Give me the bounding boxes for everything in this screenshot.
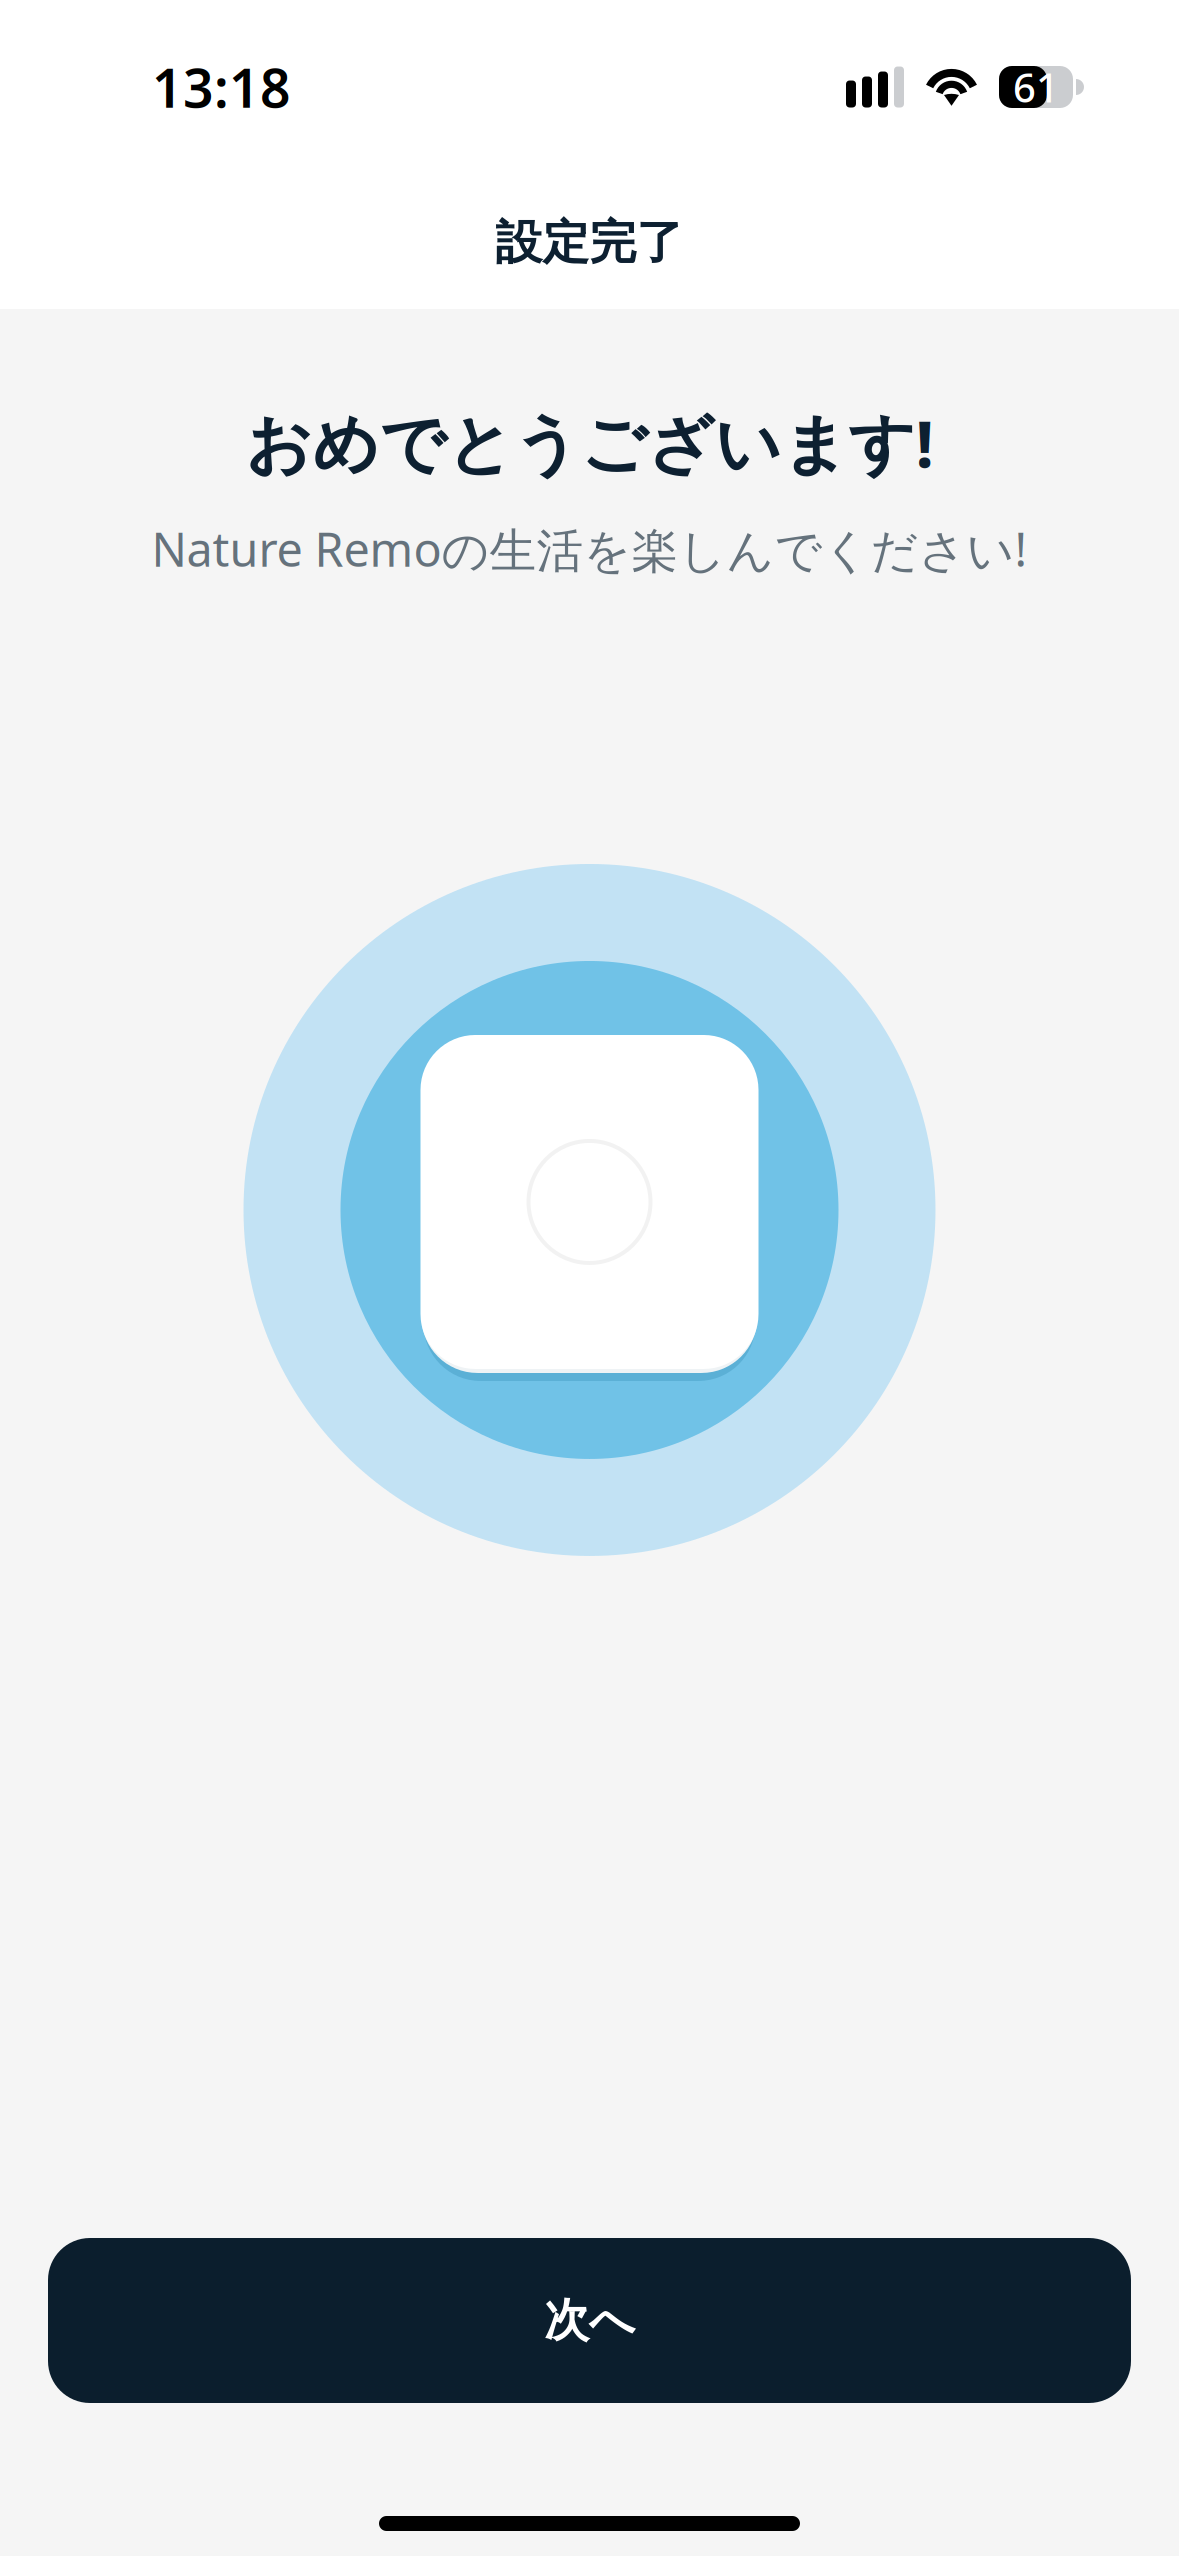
staticText: 次へ: [544, 2293, 635, 2348]
staticText: おめでとうございます!: [245, 399, 933, 486]
staticText: 13:18: [152, 52, 291, 122]
staticText: Nature Remoの生活を楽しんでください!: [151, 518, 1027, 580]
staticText: 設定完了: [495, 214, 683, 271]
staticText: 61: [1013, 60, 1059, 113]
button[interactable]: 次へ: [48, 2238, 1131, 2403]
